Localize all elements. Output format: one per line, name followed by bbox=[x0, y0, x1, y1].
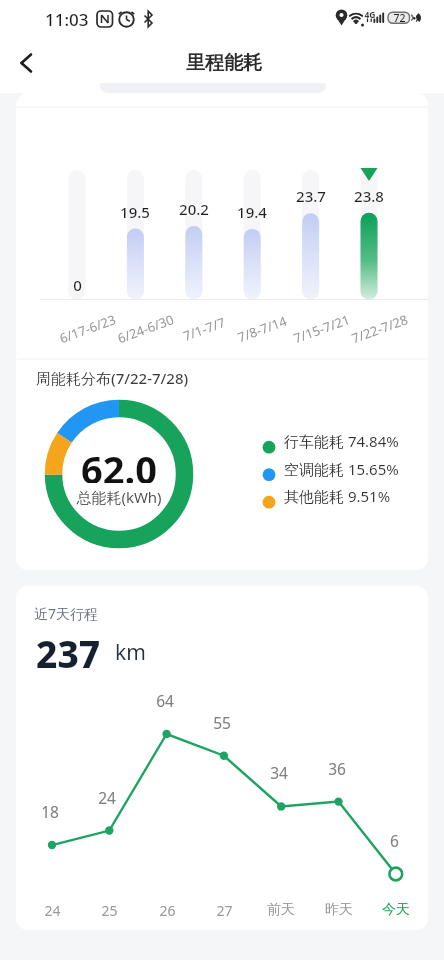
staticText: 26 bbox=[159, 901, 176, 920]
staticText: 27 bbox=[216, 901, 233, 920]
staticText: 4G bbox=[364, 9, 376, 21]
staticText: 0 bbox=[73, 275, 82, 295]
staticText: 36 bbox=[328, 758, 346, 779]
staticText: 34 bbox=[270, 762, 288, 783]
staticText: 6/24-6/30 bbox=[115, 310, 176, 347]
staticText: 近7天行程 bbox=[34, 604, 99, 623]
staticText: 7/8-7/14 bbox=[234, 312, 289, 346]
button[interactable]: 行车能耗 74.84% bbox=[255, 433, 415, 461]
staticText: 62.0 bbox=[81, 443, 157, 483]
staticText: 19.4 bbox=[237, 202, 267, 222]
staticText: km bbox=[115, 638, 146, 667]
staticText: 237 bbox=[36, 628, 101, 668]
staticText: 23.8 bbox=[354, 186, 384, 206]
staticText: 7/1-7/7 bbox=[180, 313, 228, 345]
staticText: 6/17-6/23 bbox=[57, 310, 118, 347]
staticText: 72 bbox=[393, 11, 406, 25]
staticText: 6 bbox=[390, 830, 399, 851]
staticText: 空调能耗 15.65% bbox=[284, 459, 399, 479]
staticText: 25 bbox=[101, 901, 118, 920]
staticText: 其他能耗 9.51% bbox=[284, 486, 391, 506]
staticText: 55 bbox=[213, 712, 231, 733]
staticText: 里程能耗 bbox=[186, 51, 262, 75]
button[interactable] bbox=[6, 43, 50, 83]
staticText: 周能耗分布(7/22-7/28) bbox=[36, 368, 189, 388]
button[interactable]: 其他能耗 9.51% bbox=[255, 488, 415, 516]
staticText: 今天 bbox=[382, 901, 410, 919]
staticText: 64 bbox=[156, 690, 174, 711]
staticText: 7/15-7/21 bbox=[291, 310, 352, 347]
staticText: 行车能耗 74.84% bbox=[284, 431, 399, 451]
staticText: 18 bbox=[41, 801, 59, 822]
staticText: 20.2 bbox=[179, 199, 209, 219]
button[interactable]: 空调能耗 15.65% bbox=[255, 461, 415, 489]
staticText: 前天 bbox=[267, 901, 295, 919]
staticText: 总能耗(kWh) bbox=[76, 487, 162, 507]
staticText: 11:03 bbox=[45, 8, 89, 31]
staticText: 24 bbox=[44, 901, 61, 920]
staticText: 昨天 bbox=[325, 901, 353, 919]
staticText: 23.7 bbox=[296, 186, 326, 206]
staticText: 7/22-7/28 bbox=[349, 310, 410, 347]
staticText: 24 bbox=[98, 787, 116, 808]
staticText: 19.5 bbox=[120, 202, 150, 222]
